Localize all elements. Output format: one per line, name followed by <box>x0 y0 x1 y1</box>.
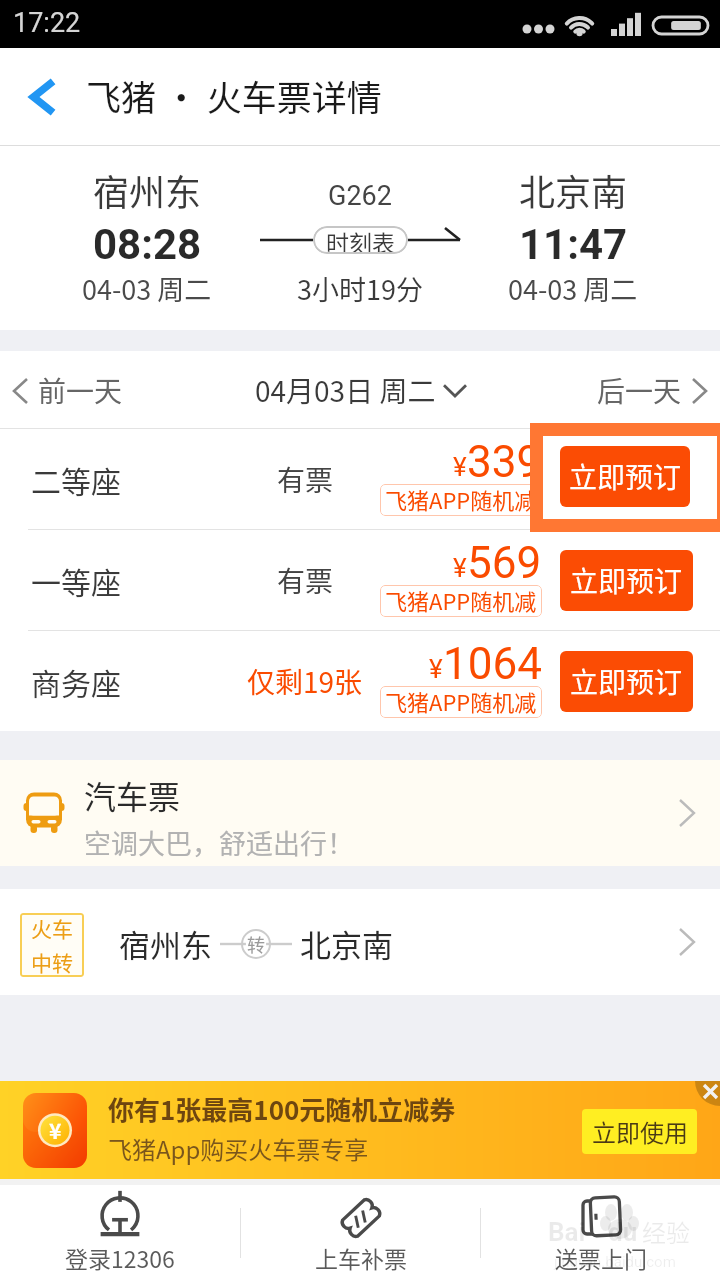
button[interactable]: 火车 <box>0 889 720 995</box>
staticText: 17:22 <box>13 7 81 39</box>
button[interactable]: 汽车票 <box>0 760 720 866</box>
staticText: 宿州东 <box>119 921 212 966</box>
staticText: 04-03 周二 <box>82 269 212 308</box>
button[interactable]: 立即预订 <box>560 449 693 510</box>
staticText: 立即预订 <box>570 661 683 702</box>
button[interactable]: 前一天 <box>0 370 141 411</box>
button[interactable]: Close <box>686 1081 720 1107</box>
staticText: 一等座 <box>31 559 121 602</box>
staticText: 转 <box>247 931 265 957</box>
staticText: 汽车票 <box>84 772 181 818</box>
staticText: 立即预订 <box>570 459 683 500</box>
staticText: 仅剩19张 <box>247 661 363 702</box>
staticText: 飞猪APP随机减 <box>385 585 537 616</box>
staticText: 上车补票 <box>315 1241 407 1274</box>
staticText: 后一天 <box>597 370 682 411</box>
staticText: 339 <box>467 436 542 488</box>
button[interactable]: Back <box>0 48 86 146</box>
staticText: G262 <box>328 180 392 212</box>
staticText: ¥ <box>453 553 467 583</box>
staticText: 1064 <box>443 638 542 690</box>
button[interactable]: 送票上门 <box>481 1185 720 1280</box>
staticText: ¥ <box>453 452 467 482</box>
button[interactable]: 立即预订 <box>560 550 693 611</box>
button[interactable]: 时刻表 <box>313 226 408 254</box>
staticText: Bai <box>548 1217 586 1247</box>
staticText: 04月03日 周二 <box>255 370 436 411</box>
button[interactable]: 后一天 <box>579 370 720 411</box>
button[interactable]: 上车补票 <box>241 1185 480 1280</box>
staticText: 立即使用 <box>592 1114 688 1149</box>
staticText: 飞猪 · 火车票详情 <box>86 70 382 121</box>
staticText: 登录12306 <box>65 1241 175 1274</box>
staticText: 北京南 <box>300 921 393 966</box>
staticText: ¥ <box>429 654 443 684</box>
staticText: 前一天 <box>38 370 123 411</box>
staticText: 二等座 <box>31 458 121 501</box>
button[interactable]: 立即预订 <box>560 651 693 712</box>
staticText: 立即预订 <box>570 560 683 601</box>
staticText: 11:47 <box>519 220 628 269</box>
staticText: 送票上门 <box>555 1241 647 1274</box>
staticText: 飞猪APP随机减 <box>385 484 537 515</box>
staticText: 3小时19分 <box>297 269 423 308</box>
staticText: 飞猪App购买火车票专享 <box>108 1131 369 1166</box>
staticText: 北京南 <box>519 164 628 216</box>
staticText: jingyan.baidu.com <box>554 1253 676 1271</box>
staticText: 空调大巴，舒适出行！ <box>84 823 354 862</box>
staticText: du <box>608 1217 638 1247</box>
staticText: 宿州东 <box>93 164 202 216</box>
button[interactable]: 立即使用 <box>582 1109 697 1154</box>
staticText: 569 <box>467 537 542 589</box>
staticText: 有票 <box>277 560 334 601</box>
staticText: 中转 <box>31 947 73 977</box>
staticText: ¥ <box>49 1115 62 1145</box>
staticText: 时刻表 <box>326 226 395 253</box>
staticText: 08:28 <box>93 220 202 269</box>
staticText: 火车 <box>31 913 73 943</box>
button[interactable]: 登录12306 <box>0 1185 240 1280</box>
staticText: 你有1张最高100元随机立减券 <box>108 1090 456 1128</box>
button[interactable]: 立即预订 <box>560 446 690 507</box>
staticText: 经验 <box>642 1214 690 1249</box>
button[interactable]: 04月03日 周二 <box>247 364 474 417</box>
staticText: 飞猪APP随机减 <box>385 686 537 717</box>
staticText: 04-03 周二 <box>508 269 638 308</box>
staticText: 商务座 <box>31 660 121 703</box>
staticText: 立即预订 <box>569 456 682 497</box>
staticText: 有票 <box>277 459 334 500</box>
